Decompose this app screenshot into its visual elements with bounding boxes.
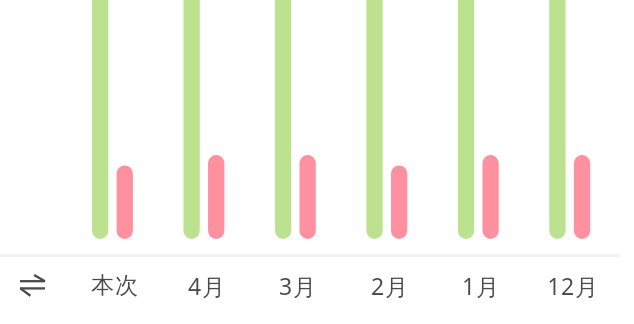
staticText: 2月: [371, 270, 409, 301]
staticText: 4月: [188, 270, 226, 301]
staticText: 本次: [91, 271, 139, 300]
button[interactable]: 1月: [435, 269, 526, 301]
button[interactable]: 2月: [344, 269, 435, 301]
button[interactable]: 4月: [161, 269, 252, 301]
staticText: 3月: [279, 270, 317, 301]
staticText: 12月: [547, 270, 599, 301]
button[interactable]: 本次: [69, 269, 160, 301]
button[interactable]: 12月: [527, 269, 618, 301]
staticText: 1月: [462, 270, 500, 301]
button[interactable]: Swap comparison order: [0, 256, 66, 317]
button[interactable]: 3月: [252, 269, 343, 301]
